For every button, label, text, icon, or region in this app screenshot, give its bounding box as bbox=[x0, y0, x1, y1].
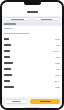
button[interactable] bbox=[2, 78, 62, 84]
button[interactable] bbox=[4, 17, 31, 21]
button[interactable] bbox=[2, 66, 62, 72]
button[interactable] bbox=[2, 42, 62, 48]
button[interactable]: Cancel bbox=[4, 99, 28, 104]
button[interactable] bbox=[2, 36, 62, 42]
button[interactable] bbox=[33, 17, 60, 21]
button[interactable] bbox=[2, 48, 62, 54]
button[interactable] bbox=[2, 84, 62, 90]
button[interactable]: Confirm bbox=[30, 99, 60, 104]
button[interactable] bbox=[2, 60, 62, 66]
button[interactable] bbox=[2, 54, 62, 60]
button[interactable] bbox=[2, 72, 62, 78]
